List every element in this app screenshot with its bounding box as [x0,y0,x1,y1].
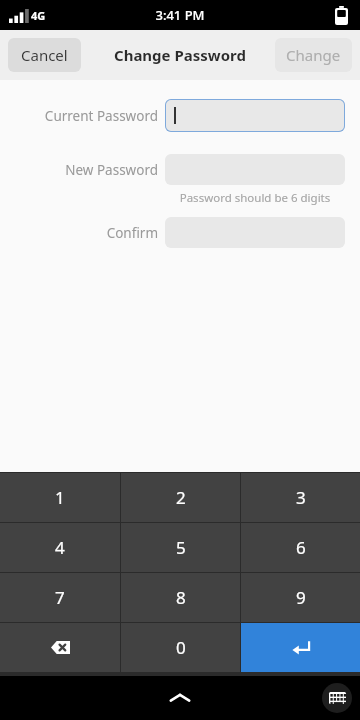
staticText: 1 [55,486,65,509]
button[interactable]: 1 [0,473,120,522]
button[interactable]: Backspace [0,623,120,672]
button[interactable]: 9 [241,573,360,622]
staticText: 6 [296,536,306,559]
button[interactable]: 2 [121,473,240,522]
staticText: Change [286,45,341,65]
staticText: 5 [176,536,186,559]
staticText: 2 [176,486,186,509]
staticText: 3:41 PM [155,6,205,24]
button[interactable]: Switch keyboard [322,683,352,713]
staticText: Password should be 6 digits [165,190,345,206]
button[interactable]: Back [155,678,205,718]
staticText: 3 [296,486,306,509]
staticText: 8 [176,586,186,609]
staticText: Cancel [21,45,68,65]
button[interactable]: 0 [121,623,240,672]
button[interactable]: 7 [0,573,120,622]
button[interactable] [165,99,345,132]
button[interactable]: 6 [241,523,360,572]
button[interactable]: Change [275,38,352,72]
button[interactable]: 3 [241,473,360,522]
staticText: New Password [16,161,158,179]
button[interactable]: 4 [0,523,120,572]
staticText: Current Password [16,107,158,125]
button[interactable]: 8 [121,573,240,622]
staticText: 7 [55,586,65,609]
staticText: Confirm [16,224,158,242]
staticText: 9 [296,586,306,609]
staticText: 4 [55,536,65,559]
staticText: 4G [31,8,46,23]
staticText: 0 [176,636,186,659]
button[interactable]: 5 [121,523,240,572]
button[interactable]: Cancel [8,38,81,72]
staticText: Change Password [114,45,246,65]
button[interactable]: Enter [241,623,360,672]
